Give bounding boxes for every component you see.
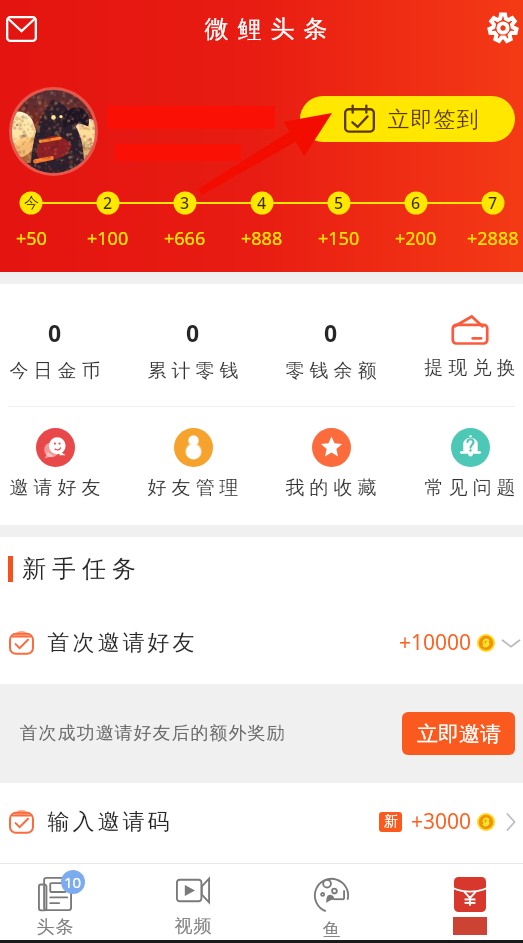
button[interactable]: 0 [271,284,391,406]
button[interactable]: 0 [0,284,115,406]
staticText: 邀请好友 [7,476,103,500]
staticText: 首次成功邀请好友后的额外奖励 [19,722,285,745]
staticText: 鱼 [322,919,341,940]
staticText: 7 [488,192,498,214]
staticText: +666 [164,226,206,251]
staticText: 3 [180,192,190,214]
staticText: 新 [384,813,398,831]
button[interactable]: 立即签到 [300,96,515,142]
button[interactable]: 好友管理 [133,407,253,525]
staticText: +50 [16,226,47,251]
staticText: +888 [241,226,283,251]
staticText: 常见问题 [422,476,518,500]
staticText: +150 [318,226,360,251]
button[interactable]: 红包 [410,864,523,940]
button[interactable]: 输入邀请码 [0,783,523,860]
button[interactable]: 邀请好友 [0,407,115,525]
staticText: 6 [411,192,421,214]
staticText: 微鲤头条 [200,14,332,44]
staticText: 今日金币 [7,359,103,383]
staticText: 4 [257,192,267,214]
button[interactable]: Profile avatar [9,87,98,176]
button[interactable]: 提现兑换 [410,284,523,406]
button[interactable]: 0 [133,284,253,406]
staticText: 累计零钱 [145,359,241,383]
staticText: +3000 [411,807,472,836]
button[interactable]: 头条 [0,864,115,940]
button[interactable]: 鱼 [271,864,391,940]
button[interactable]: Messages [0,3,47,55]
staticText: 0 [48,317,62,348]
staticText: 好友管理 [145,476,241,500]
staticText: 10 [64,872,82,892]
staticText: 2 [103,192,113,214]
button[interactable]: 立即邀请 [402,712,515,755]
staticText: +2888 [467,226,519,251]
button[interactable]: 我的收藏 [271,407,391,525]
staticText: 立即邀请 [417,721,501,747]
button[interactable]: 视频 [133,864,253,940]
staticText: +200 [395,226,437,251]
staticText: 输入邀请码 [46,808,171,836]
staticText: 0 [186,317,200,348]
button[interactable]: 首次邀请好友 [0,601,523,684]
staticText: 立即签到 [387,106,479,134]
staticText: 提现兑换 [422,356,518,380]
staticText: +100 [87,226,129,251]
staticText: 今 [24,194,39,213]
staticText: +10000 [399,628,472,657]
button[interactable]: Settings [477,2,523,54]
staticText: 我的收藏 [283,476,379,500]
staticText: 0 [324,317,338,348]
staticText: 头条 [36,916,74,939]
staticText: 视频 [174,915,212,938]
staticText: 零钱余额 [283,359,379,383]
staticText: 5 [334,192,344,214]
staticText: 首次邀请好友 [46,629,196,657]
staticText: 新手任务 [19,554,139,584]
button[interactable]: 常见问题 [410,407,523,525]
